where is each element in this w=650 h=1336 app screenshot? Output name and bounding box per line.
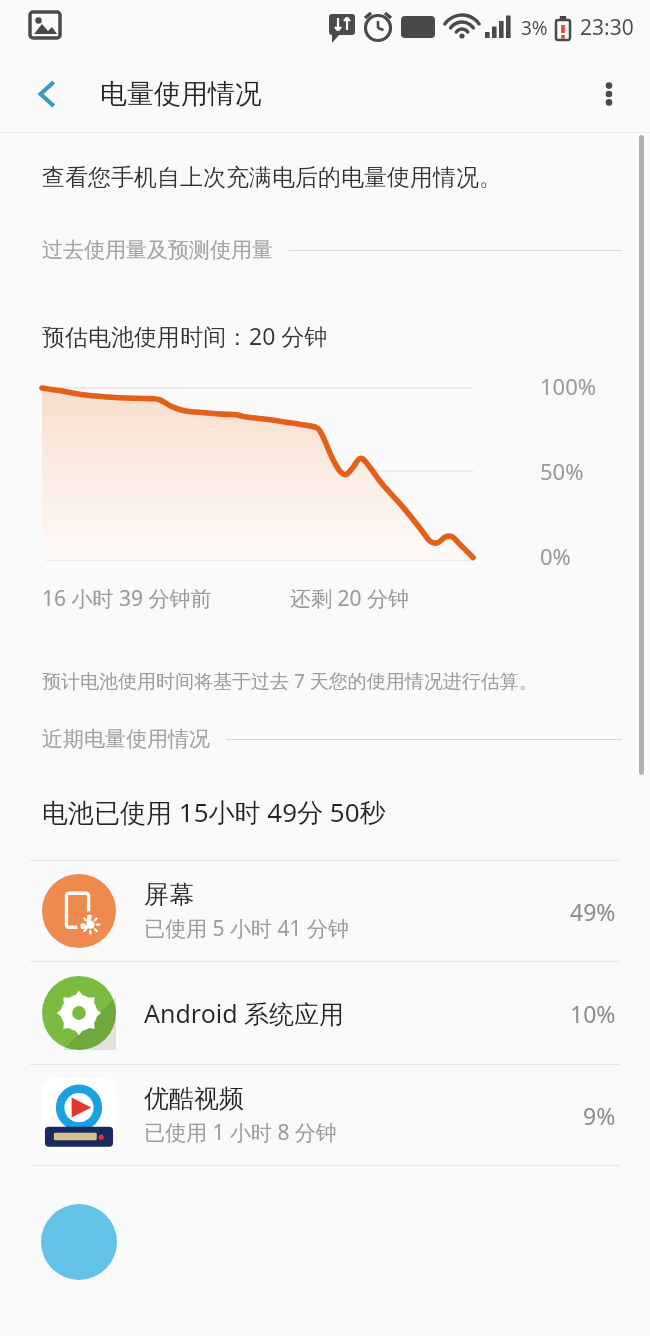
staticText: 3%: [521, 15, 548, 41]
staticText: 已使用 1 小时 8 分钟: [144, 1118, 337, 1147]
button[interactable]: Back: [18, 65, 76, 123]
staticText: 电池已使用 15小时 49分 50秒: [42, 794, 386, 830]
button[interactable]: More options: [580, 65, 638, 123]
staticText: 屏幕: [144, 879, 194, 910]
staticText: 50%: [540, 456, 584, 486]
button[interactable]: 优酷视频: [0, 1065, 650, 1165]
staticText: 100%: [540, 371, 597, 401]
staticText: 还剩 20 分钟: [290, 584, 409, 613]
staticText: 优酷视频: [144, 1083, 244, 1114]
staticText: 预估电池使用时间：20 分钟: [42, 320, 328, 351]
staticText: 16 小时 39 分钟前: [42, 584, 212, 613]
staticText: 查看您手机自上次充满电后的电量使用情况。: [42, 163, 502, 192]
button[interactable]: 屏幕: [0, 861, 650, 961]
staticText: 10%: [570, 998, 616, 1029]
staticText: 预计电池使用时间将基于过去 7 天您的使用情况进行估算。: [42, 668, 538, 694]
staticText: 过去使用量及预测使用量: [42, 237, 273, 263]
staticText: 电量使用情况: [100, 77, 262, 111]
staticText: 0%: [540, 541, 571, 571]
staticText: 9%: [583, 1100, 616, 1131]
button[interactable]: Android 系统应用: [0, 962, 650, 1064]
staticText: 近期电量使用情况: [42, 726, 210, 752]
staticText: 23:30: [580, 13, 634, 42]
staticText: 已使用 5 小时 41 分钟: [144, 914, 349, 943]
staticText: Android 系统应用: [144, 996, 345, 1030]
staticText: 49%: [570, 896, 616, 927]
